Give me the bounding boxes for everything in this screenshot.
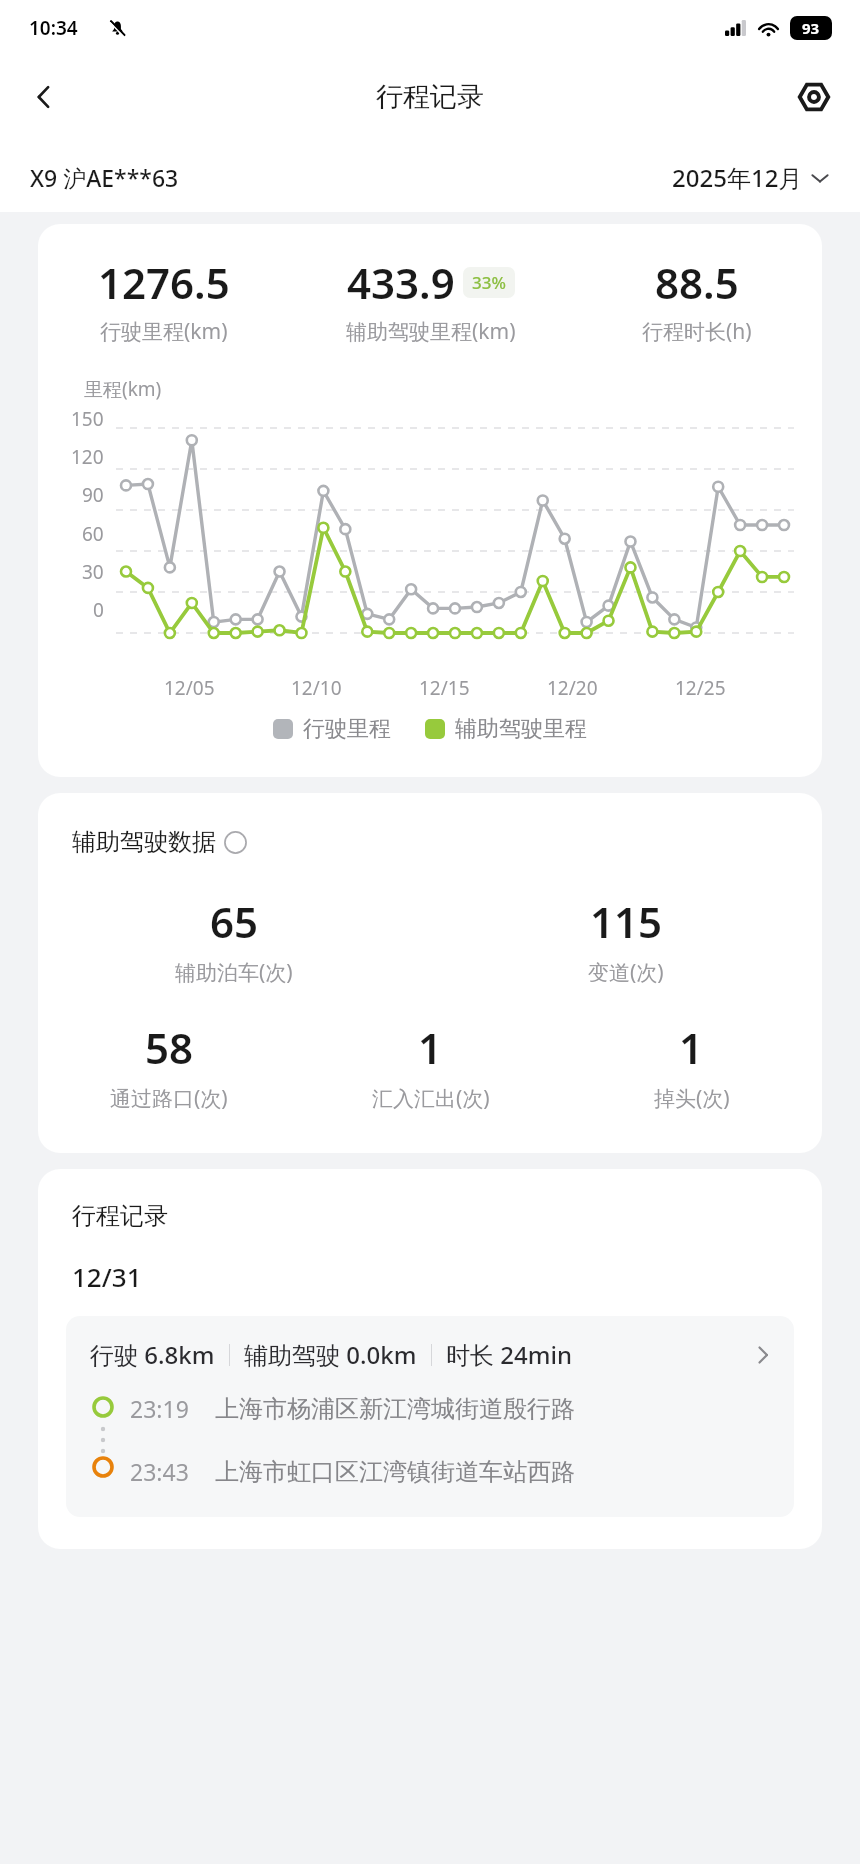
staticText: 433.9: [347, 254, 455, 311]
staticText: 辅助泊车(次): [175, 958, 293, 987]
staticText: 23:43: [130, 1456, 189, 1487]
staticText: 变道(次): [588, 958, 664, 987]
staticText: 12/31: [72, 1259, 142, 1294]
button[interactable]: 行驶 6.8km: [66, 1316, 794, 1517]
staticText: 0: [93, 597, 104, 623]
staticText: 115: [590, 893, 663, 950]
staticText: 12/20: [547, 675, 598, 701]
staticText: 93: [802, 18, 820, 38]
staticText: 1: [418, 1019, 443, 1076]
staticText: 65: [210, 893, 259, 950]
staticText: 上海市杨浦区新江湾城街道殷行路: [215, 1394, 575, 1424]
staticText: 行程时长(h): [642, 317, 752, 346]
staticText: 12/15: [419, 675, 470, 701]
staticText: 行驶里程: [303, 715, 391, 743]
staticText: 1: [679, 1019, 704, 1076]
staticText: 辅助驾驶 0.0km: [244, 1338, 417, 1371]
staticText: 掉头(次): [654, 1084, 730, 1113]
staticText: X9 沪AE***63: [30, 162, 179, 193]
staticText: 120: [71, 444, 104, 470]
staticText: 2025年12月: [672, 161, 803, 194]
staticText: 58: [145, 1019, 194, 1076]
staticText: 90: [82, 482, 104, 508]
staticText: 88.5: [655, 254, 739, 311]
button[interactable]: 辅助驾驶数据: [72, 827, 247, 857]
staticText: 辅助驾驶里程(km): [346, 317, 516, 346]
staticText: 10:34: [29, 15, 78, 41]
button[interactable]: Back: [18, 71, 70, 123]
staticText: 23:19: [130, 1393, 189, 1424]
staticText: 12/25: [675, 675, 726, 701]
staticText: 1276.5: [98, 254, 230, 311]
staticText: 12/10: [291, 675, 342, 701]
staticText: 行程记录: [72, 1201, 168, 1231]
staticText: 行驶 6.8km: [90, 1338, 215, 1371]
staticText: 通过路口(次): [110, 1084, 228, 1113]
staticText: 辅助驾驶里程: [455, 715, 587, 743]
staticText: 时长 24min: [446, 1338, 572, 1371]
staticText: 行驶里程(km): [100, 317, 228, 346]
staticText: 辅助驾驶数据: [72, 827, 216, 857]
staticText: 60: [82, 521, 104, 547]
staticText: 33%: [472, 271, 506, 294]
staticText: 汇入汇出(次): [372, 1084, 490, 1113]
staticText: 上海市虹口区江湾镇街道车站西路: [215, 1457, 575, 1487]
staticText: 12/05: [164, 675, 215, 701]
button[interactable]: Settings: [788, 71, 840, 123]
button[interactable]: 2025年12月: [672, 161, 830, 194]
staticText: 150: [71, 406, 104, 432]
staticText: 里程(km): [84, 376, 162, 402]
staticText: 30: [82, 559, 104, 585]
staticText: 行程记录: [376, 80, 484, 114]
